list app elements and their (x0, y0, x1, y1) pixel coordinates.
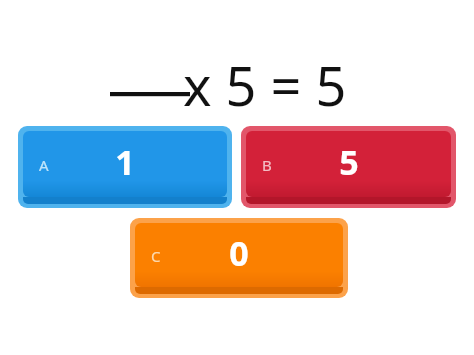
other: Answer A: 1 (0, 0, 214, 82)
button[interactable]: B (241, 126, 456, 208)
staticText: 0 (229, 230, 249, 276)
staticText: x 5 = 5 (183, 48, 347, 122)
button[interactable]: C (130, 218, 348, 298)
other: Answer C: 0 (0, 0, 218, 80)
staticText: 1 (115, 139, 135, 185)
button[interactable]: A (18, 126, 232, 208)
staticText: B (262, 155, 272, 175)
other: Answer B: 5 (0, 0, 215, 82)
staticText: 5 (339, 139, 359, 185)
staticText: A (39, 155, 49, 175)
staticText: C (151, 246, 161, 266)
